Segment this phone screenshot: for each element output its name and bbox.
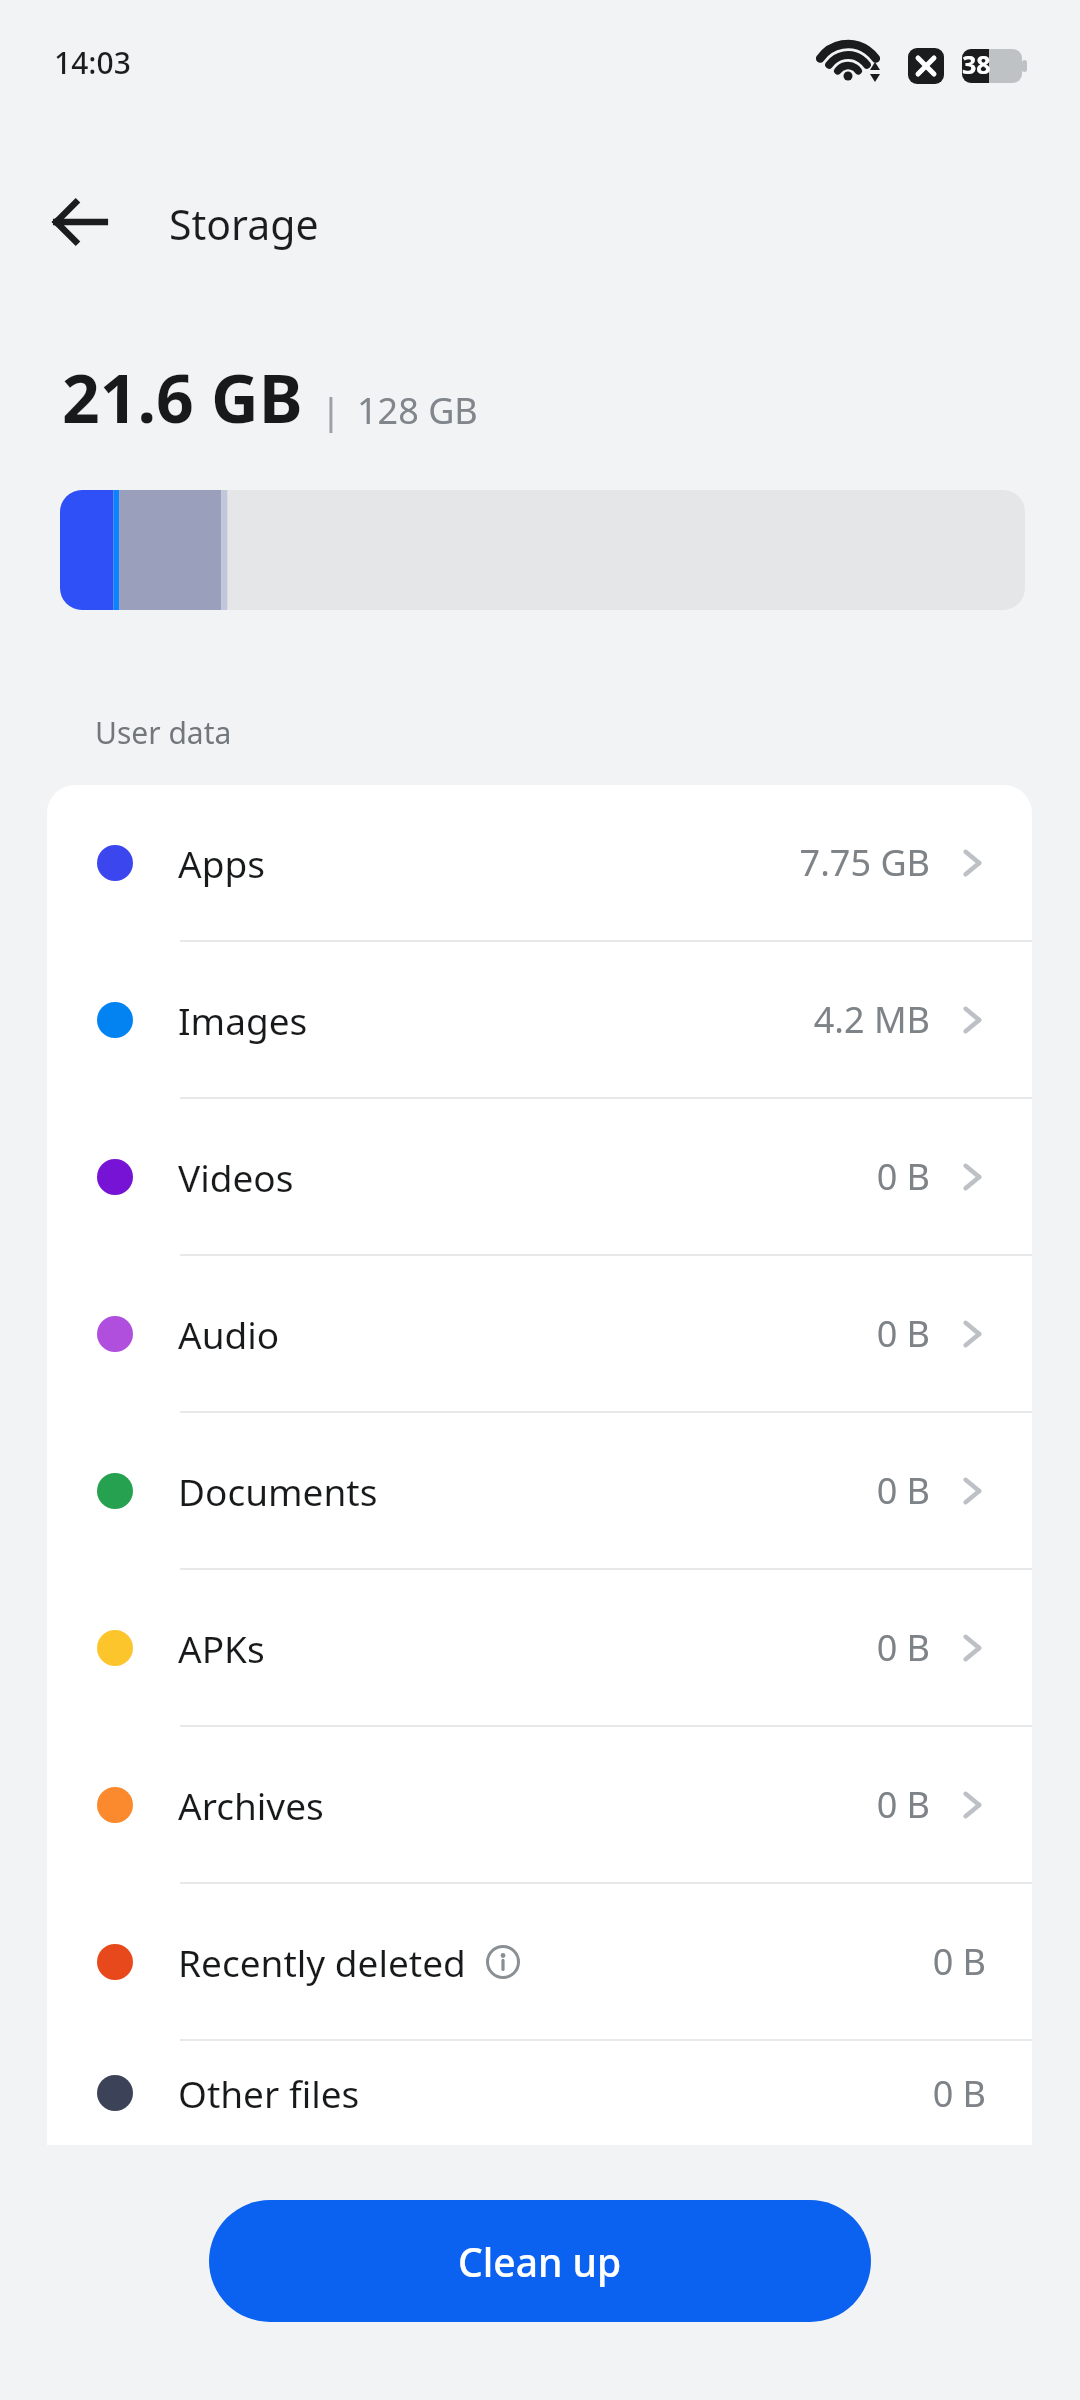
staticText: |: [321, 386, 341, 435]
staticText: 21.6 GB: [62, 352, 303, 442]
button[interactable]: Recently deleted: [47, 1884, 1032, 2039]
staticText: Images: [178, 995, 308, 1045]
button[interactable]: Back: [24, 166, 136, 278]
button[interactable]: Clean up: [209, 2200, 871, 2322]
staticText: APKs: [178, 1623, 265, 1673]
staticText: Apps: [178, 838, 265, 888]
staticText: Videos: [178, 1152, 294, 1202]
staticText: 0 B: [932, 1937, 986, 1986]
staticText: Archives: [178, 1780, 324, 1830]
staticText: 0 B: [876, 1466, 930, 1515]
staticText: 7.75 GB: [799, 838, 930, 887]
staticText: 128 GB: [357, 386, 478, 435]
staticText: Other files: [178, 2068, 360, 2118]
staticText: Documents: [178, 1466, 378, 1516]
staticText: 38: [962, 47, 991, 81]
staticText: Audio: [178, 1309, 280, 1359]
button[interactable]: Audio: [47, 1256, 1032, 1411]
staticText: Storage: [169, 196, 319, 252]
button[interactable]: Apps: [47, 785, 1032, 940]
staticText: Clean up: [458, 2235, 622, 2288]
button[interactable]: Other files: [47, 2041, 1032, 2145]
staticText: User data: [95, 712, 232, 753]
staticText: 14:03: [54, 42, 131, 83]
staticText: 0 B: [932, 2069, 986, 2118]
button[interactable]: Documents: [47, 1413, 1032, 1568]
button[interactable]: APKs: [47, 1570, 1032, 1725]
staticText: 4.2 MB: [813, 995, 930, 1044]
staticText: 0 B: [876, 1780, 930, 1829]
staticText: 0 B: [876, 1152, 930, 1201]
button[interactable]: Videos: [47, 1099, 1032, 1254]
staticText: Recently deleted: [178, 1937, 466, 1987]
button[interactable]: Images: [47, 942, 1032, 1097]
staticText: 0 B: [876, 1623, 930, 1672]
staticText: 0 B: [876, 1309, 930, 1358]
button[interactable]: Archives: [47, 1727, 1032, 1882]
